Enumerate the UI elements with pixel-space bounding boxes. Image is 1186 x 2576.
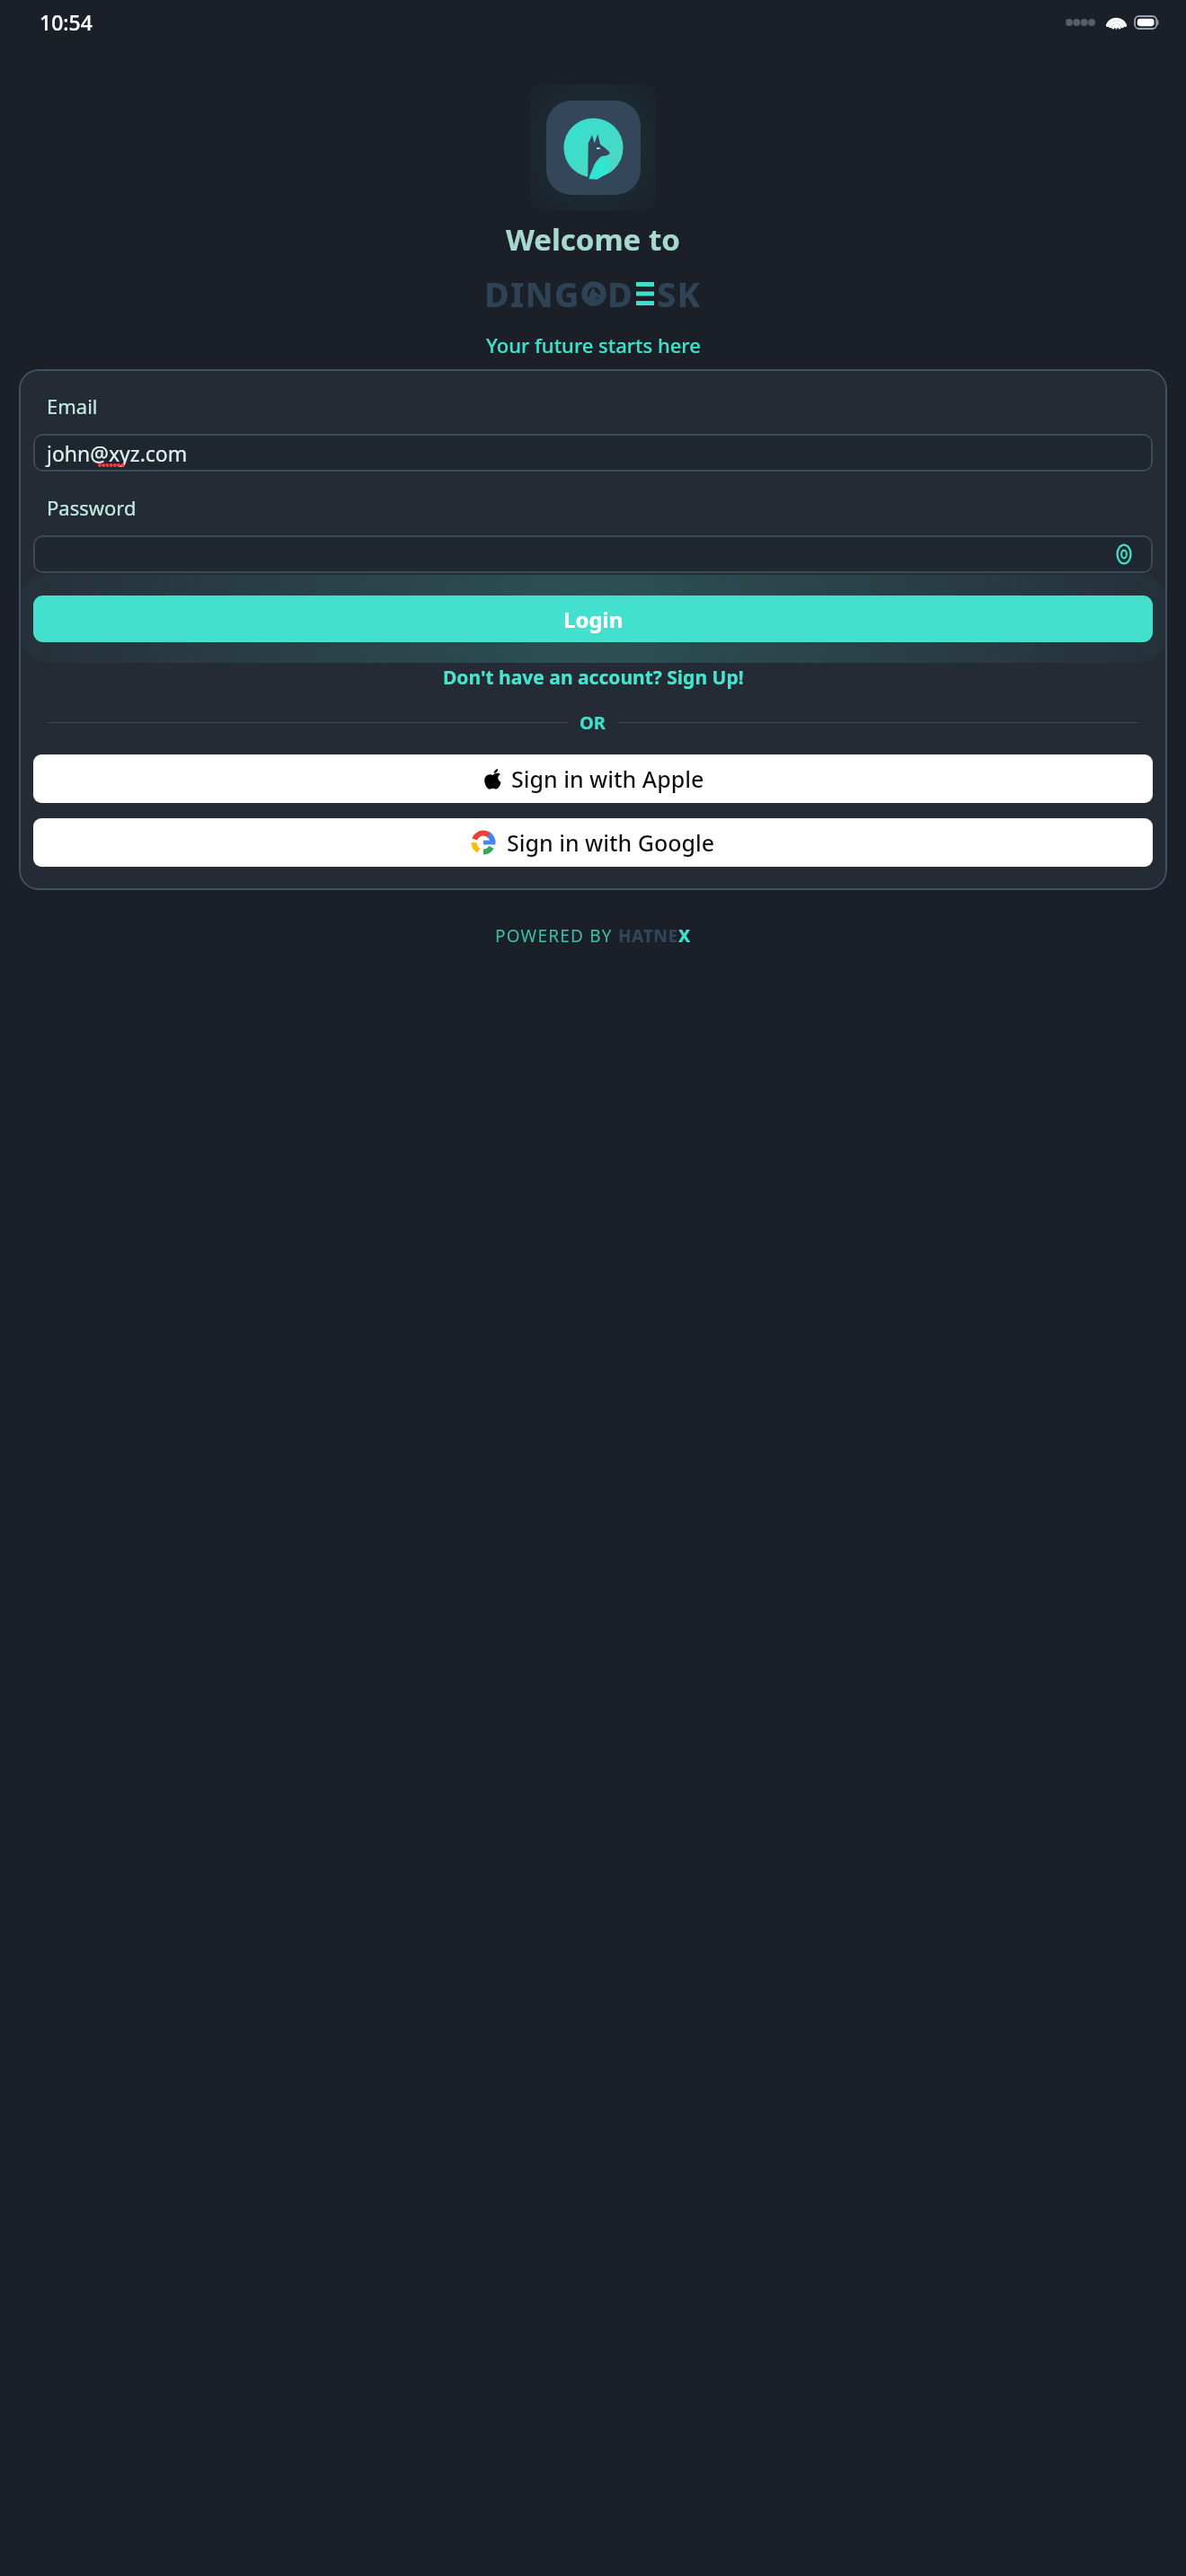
staticText: SK bbox=[657, 270, 702, 317]
staticText: OR bbox=[580, 710, 606, 735]
staticText: D bbox=[607, 270, 633, 317]
button[interactable]: john@xyz.com bbox=[33, 434, 1153, 472]
staticText: Password bbox=[47, 494, 137, 521]
staticText: john@xyz.com bbox=[47, 439, 188, 467]
button[interactable]: Show password bbox=[33, 535, 1153, 573]
staticText: Email bbox=[47, 393, 98, 419]
staticText: Login bbox=[563, 604, 624, 634]
staticText: Sign in with Apple bbox=[511, 763, 704, 794]
staticText: 10:54 bbox=[40, 8, 93, 36]
button[interactable]: Login bbox=[33, 595, 1153, 642]
staticText: Sign in with Google bbox=[507, 827, 715, 858]
staticText: POWERED BY bbox=[495, 924, 618, 948]
staticText: Don't have an account? Sign Up! bbox=[443, 665, 744, 691]
staticText: HATNE bbox=[618, 924, 678, 948]
staticText: X bbox=[678, 924, 691, 948]
staticText: DING bbox=[484, 270, 580, 317]
button[interactable]: Sign in with Google bbox=[33, 818, 1153, 867]
button[interactable]: Sign in with Apple bbox=[33, 754, 1153, 803]
button[interactable]: Show password bbox=[1109, 539, 1139, 569]
staticText: Your future starts here bbox=[486, 331, 701, 358]
button[interactable]: Don't have an account? Sign Up! bbox=[33, 665, 1153, 691]
staticText: Welcome to bbox=[506, 219, 680, 260]
